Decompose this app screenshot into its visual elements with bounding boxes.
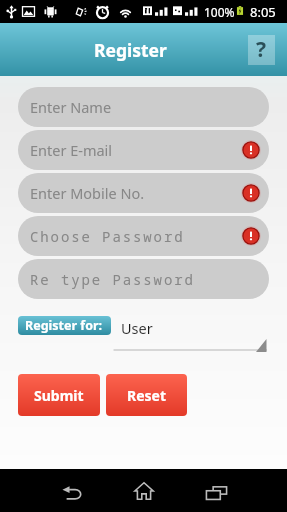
staticText: ?: [256, 35, 267, 64]
staticText: Enter Mobile No.: [30, 183, 145, 203]
staticText: Submit: [34, 386, 84, 405]
button[interactable]: Enter E-mail: [18, 130, 269, 170]
staticText: Choose Password: [30, 227, 185, 246]
button[interactable]: Choose Password: [18, 216, 269, 256]
staticText: Enter E-mail: [30, 140, 113, 160]
button[interactable]: Reset: [106, 374, 187, 416]
staticText: Re type Password: [30, 270, 195, 289]
staticText: 8:05: [250, 3, 276, 21]
staticText: 100%: [204, 4, 235, 20]
button[interactable]: Re type Password: [18, 259, 269, 299]
button[interactable]: Enter Mobile No.: [18, 173, 269, 213]
button[interactable]: Help: [248, 35, 275, 65]
button[interactable]: Enter Name: [18, 87, 269, 127]
button[interactable]: Recent apps: [180, 469, 252, 512]
button[interactable]: Home: [108, 469, 180, 512]
staticText: Register: [94, 38, 167, 62]
button[interactable]: Submit: [18, 374, 100, 416]
staticText: Enter Name: [30, 97, 112, 117]
button[interactable]: Back: [36, 469, 108, 512]
staticText: User: [121, 318, 153, 338]
staticText: Reset: [127, 386, 167, 405]
button[interactable]: User: [113, 314, 267, 352]
staticText: Register for:: [25, 317, 103, 334]
button[interactable]: Register for:: [18, 316, 111, 335]
